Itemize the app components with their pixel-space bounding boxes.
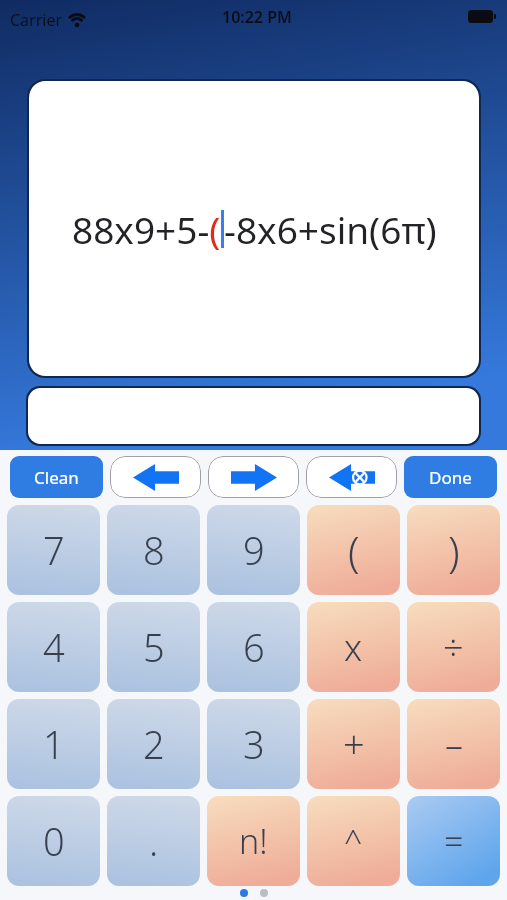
button[interactable]: Done	[404, 456, 497, 498]
staticText: x	[344, 623, 363, 672]
staticText: +	[343, 718, 365, 770]
button[interactable]: 3	[207, 699, 300, 789]
button[interactable]: 5	[107, 602, 200, 692]
staticText: 8	[143, 524, 165, 576]
button[interactable]: +	[307, 699, 400, 789]
staticText: ^	[344, 819, 363, 863]
button[interactable]: (	[307, 505, 400, 595]
button[interactable]: .	[107, 796, 200, 886]
staticText: 10:22 PM	[222, 6, 292, 28]
staticText: n!	[239, 818, 268, 864]
staticText: .	[149, 815, 159, 867]
button[interactable]	[110, 456, 201, 498]
button[interactable]: 8	[107, 505, 200, 595]
staticText: 88x9+5-(	[72, 204, 221, 254]
staticText: (	[348, 522, 360, 579]
staticText: 0	[43, 815, 65, 867]
staticText: 6	[243, 621, 265, 673]
staticText: 5	[143, 621, 165, 673]
button[interactable]: =	[407, 796, 500, 886]
staticText: 4	[43, 621, 65, 673]
staticText: 3	[243, 718, 265, 770]
staticText: 1	[43, 718, 65, 770]
staticText: Done	[429, 466, 472, 489]
staticText: =	[444, 818, 464, 864]
button[interactable]	[208, 456, 299, 498]
button[interactable]: 7	[7, 505, 100, 595]
button[interactable]: –	[407, 699, 500, 789]
button[interactable]: Clean	[10, 456, 103, 498]
button[interactable]	[306, 456, 397, 498]
button[interactable]: ^	[307, 796, 400, 886]
button[interactable]: )	[407, 505, 500, 595]
button[interactable]: x	[307, 602, 400, 692]
button[interactable]: n!	[207, 796, 300, 886]
button[interactable]: ÷	[407, 602, 500, 692]
button[interactable]: 2	[107, 699, 200, 789]
staticText: –	[445, 720, 463, 769]
staticText: ÷	[443, 623, 464, 672]
button[interactable]	[28, 388, 479, 444]
staticText: 7	[43, 524, 65, 576]
staticText: -8x6+sin(6π)	[224, 204, 437, 254]
staticText: 2	[143, 718, 165, 770]
staticText: Carrier	[10, 9, 63, 31]
staticText: )	[448, 522, 460, 579]
staticText: 9	[243, 524, 265, 576]
button[interactable]: 1	[7, 699, 100, 789]
staticText: Clean	[34, 466, 79, 489]
button[interactable]: 4	[7, 602, 100, 692]
button[interactable]: 9	[207, 505, 300, 595]
button[interactable]: 6	[207, 602, 300, 692]
button[interactable]: 88x9+5-(	[29, 81, 479, 376]
button[interactable]: 0	[7, 796, 100, 886]
